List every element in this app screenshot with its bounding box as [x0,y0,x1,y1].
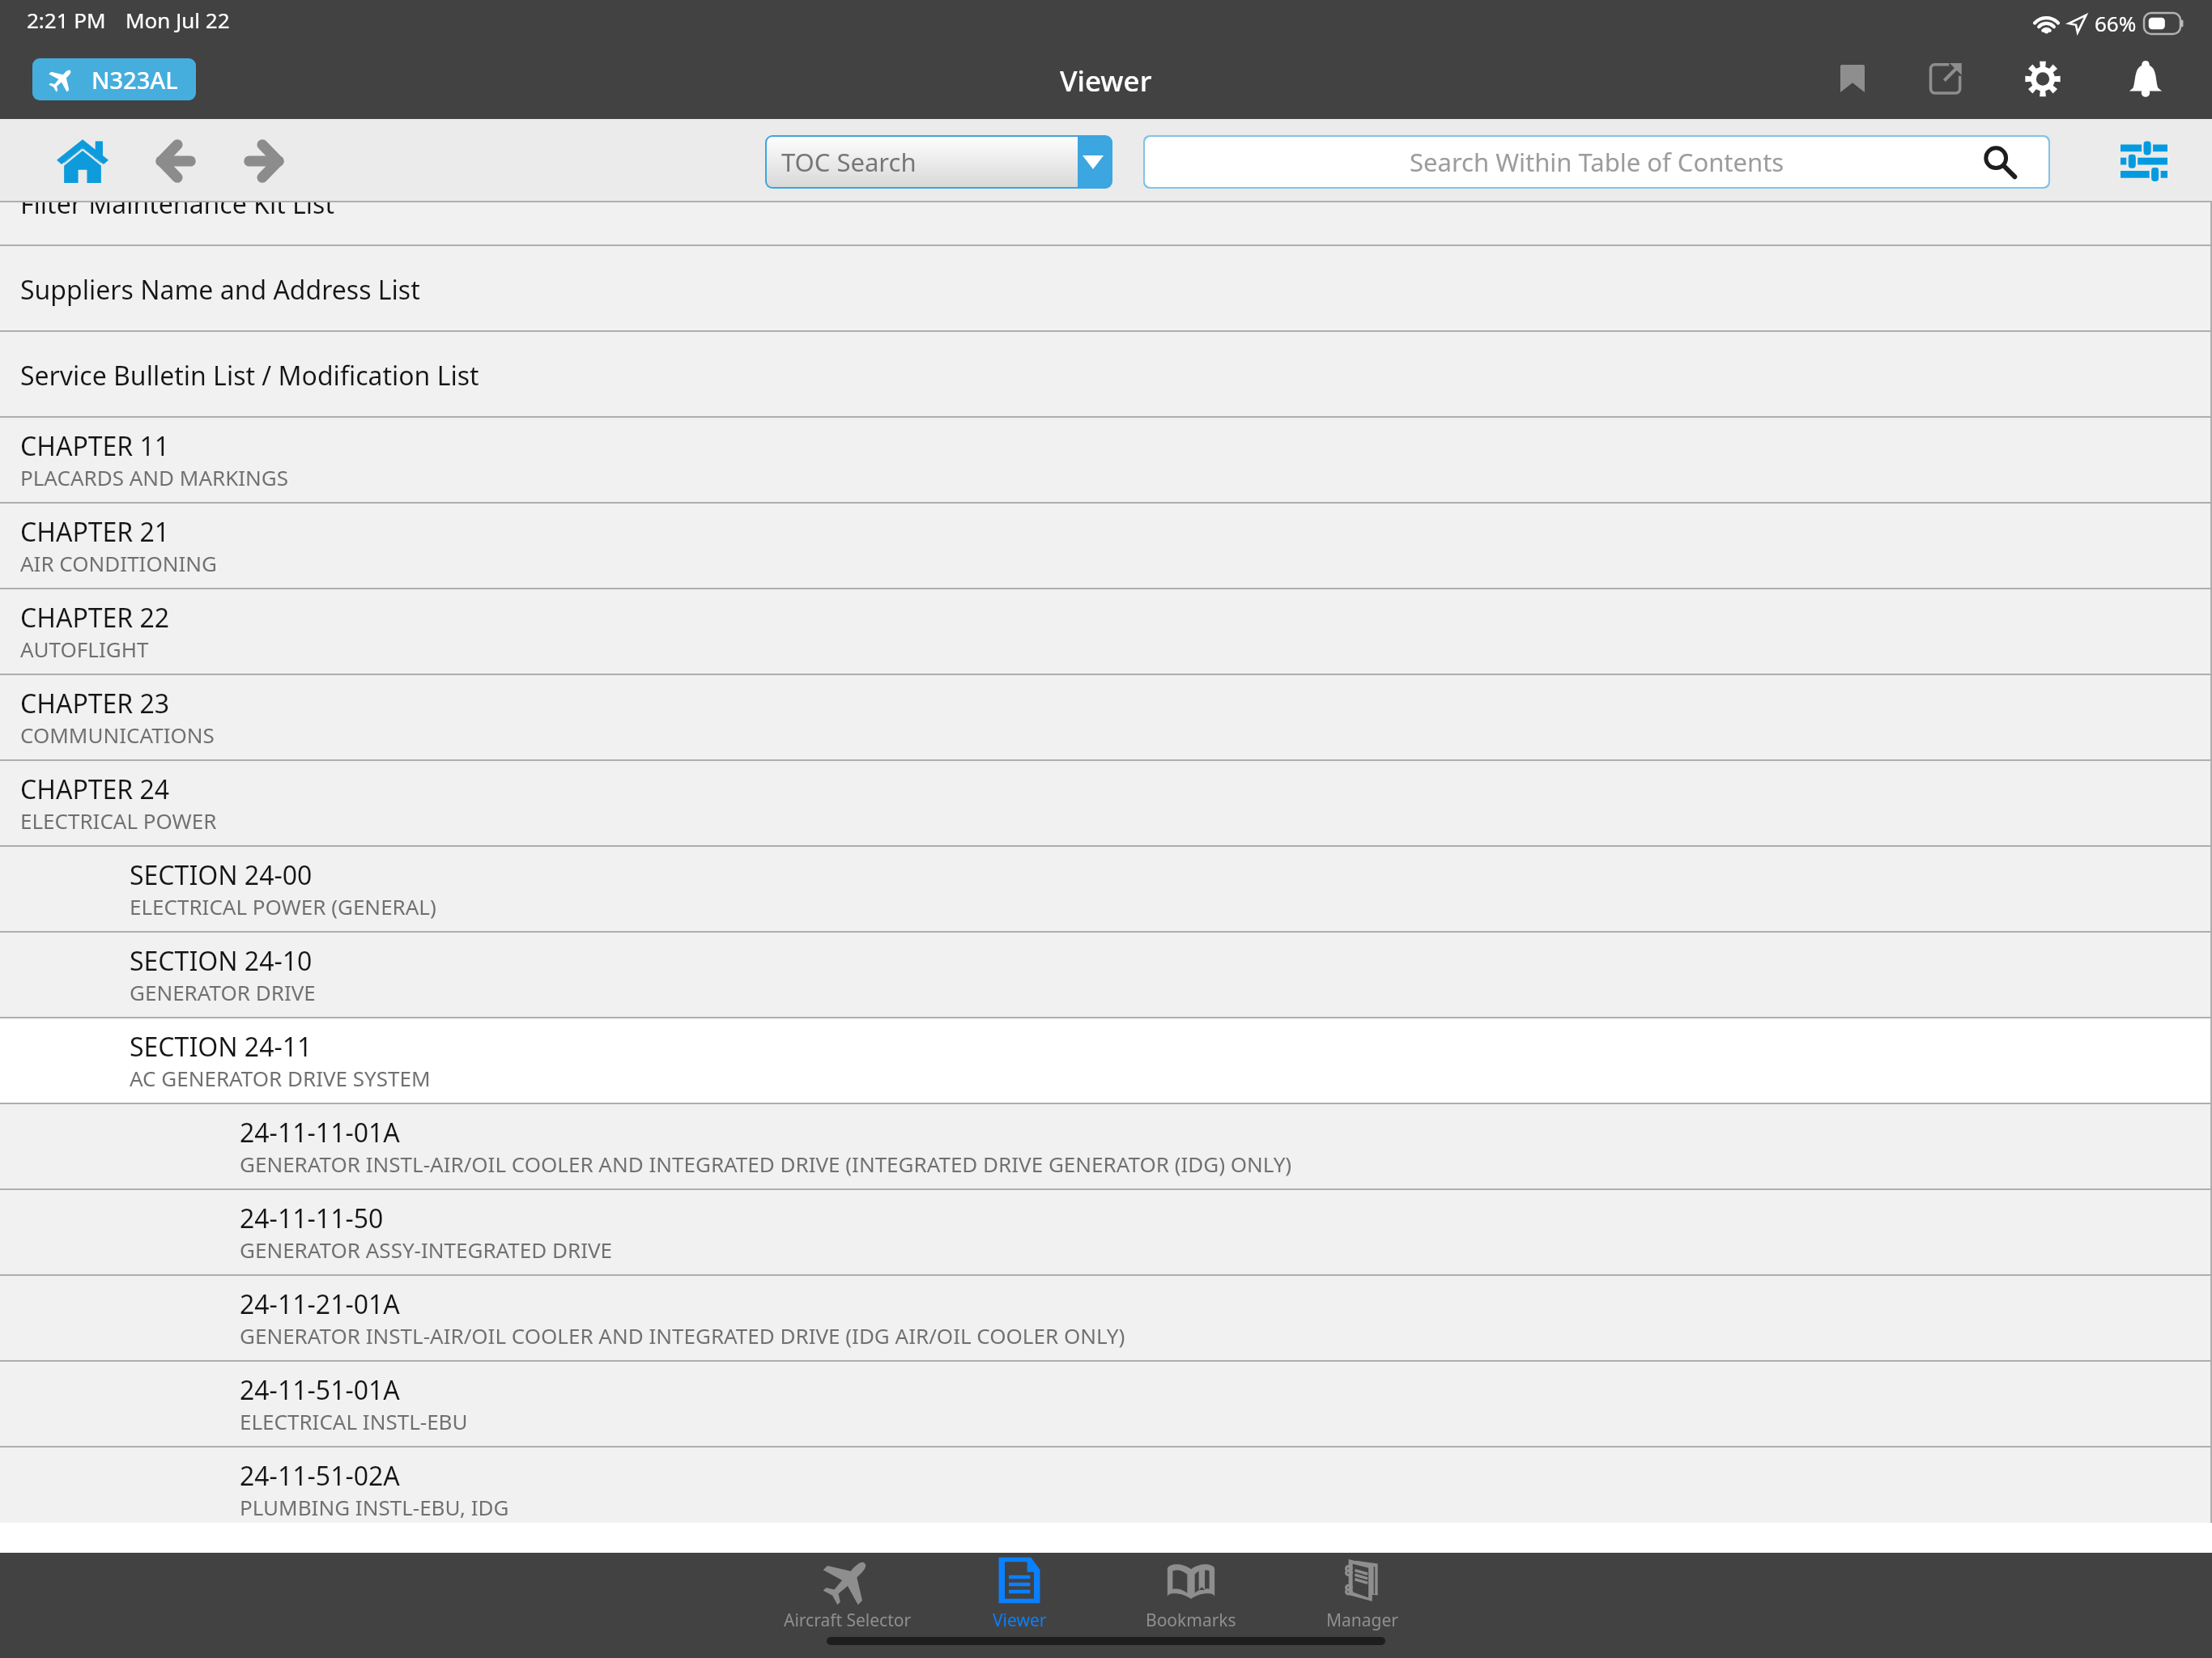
staticText: GENERATOR DRIVE [130,978,316,1006]
staticText: Viewer [993,1609,1047,1632]
staticText: CHAPTER 11 [20,428,170,464]
staticText: COMMUNICATIONS [20,721,215,749]
staticText: 24-11-11-01A [240,1115,400,1150]
button[interactable]: TOC Search scope [765,135,1112,189]
staticText: CHAPTER 21 [20,514,170,550]
button[interactable]: CHAPTER 11 [0,418,2212,502]
staticText: SECTION 24-00 [130,857,313,893]
staticText: 24-11-21-01A [240,1286,400,1322]
button[interactable]: 24-11-11-50 [0,1190,2212,1274]
staticText: AIR CONDITIONING [20,549,217,577]
button[interactable]: CHAPTER 24 [0,761,2212,845]
staticText: ELECTRICAL POWER [20,806,217,835]
button[interactable]: Service Bulletin List / Modification Lis… [0,332,2212,416]
staticText: TOC Search [781,145,917,179]
staticText: GENERATOR ASSY-INTEGRATED DRIVE [240,1235,613,1264]
button[interactable]: SECTION 24-00 [0,847,2212,931]
button[interactable]: SECTION 24-11 [0,1018,2212,1103]
button[interactable]: Bookmarks [1105,1553,1277,1640]
staticText: GENERATOR INSTL-AIR/OIL COOLER AND INTEG… [240,1321,1125,1350]
staticText: Bookmarks [1146,1609,1236,1632]
staticText: 66% [2095,9,2137,37]
button[interactable]: Settings [2009,45,2077,113]
staticText: Manager [1326,1609,1399,1632]
button[interactable]: Filter Maintenance Kit List [0,202,2212,244]
staticText: 24-11-51-02A [240,1458,400,1494]
staticText: PLUMBING INSTL-EBU, IDG [240,1493,509,1521]
button[interactable]: Manager [1277,1553,1448,1640]
button[interactable]: CHAPTER 23 [0,675,2212,759]
staticText: Aircraft Selector [784,1609,912,1632]
button[interactable]: Back [136,124,214,198]
staticText: N323AL [91,64,178,96]
button[interactable]: Forward [225,124,303,198]
staticText: Search Within Table of Contents [1410,145,1784,179]
button[interactable]: Open externally [1912,45,1980,113]
button[interactable]: CHAPTER 22 [0,589,2212,674]
button[interactable]: 24-11-51-02A [0,1448,2212,1523]
staticText: Service Bulletin List / Modification Lis… [20,358,479,393]
staticText: AUTOFLIGHT [20,635,149,663]
staticText: 24-11-11-50 [240,1201,384,1236]
button[interactable]: 24-11-11-01A [0,1104,2212,1188]
button[interactable]: Search Within Table of Contents [1143,135,2050,189]
staticText: Filter Maintenance Kit List [20,202,334,222]
staticText: ELECTRICAL POWER (GENERAL) [130,892,436,920]
button[interactable]: Aircraft Selector [762,1553,934,1640]
staticText: CHAPTER 22 [20,600,170,636]
staticText: GENERATOR INSTL-AIR/OIL COOLER AND INTEG… [240,1150,1292,1178]
button[interactable]: Suppliers Name and Address List [0,246,2212,330]
staticText: Suppliers Name and Address List [20,272,420,308]
button[interactable]: SECTION 24-10 [0,933,2212,1017]
staticText: CHAPTER 24 [20,772,170,807]
button[interactable]: Bookmark [1819,45,1887,113]
button[interactable]: CHAPTER 21 [0,504,2212,588]
staticText: AC GENERATOR DRIVE SYSTEM [130,1064,431,1092]
button[interactable]: 24-11-21-01A [0,1276,2212,1360]
button[interactable]: Home [44,124,121,198]
button[interactable]: Viewer [934,1553,1105,1640]
staticText: SECTION 24-11 [130,1029,313,1065]
staticText: Viewer [1060,62,1152,100]
button[interactable]: N323AL [32,58,196,100]
staticText: ELECTRICAL INSTL-EBU [240,1407,468,1435]
button[interactable]: Notifications [2112,45,2180,113]
staticText: 2:21 PM [27,6,106,34]
staticText: Mon Jul 22 [125,6,230,34]
button[interactable]: 24-11-51-01A [0,1362,2212,1446]
button[interactable]: Filter settings [2105,119,2183,202]
staticText: CHAPTER 23 [20,686,170,721]
staticText: 24-11-51-01A [240,1372,400,1408]
staticText: SECTION 24-10 [130,943,313,979]
staticText: PLACARDS AND MARKINGS [20,463,289,491]
